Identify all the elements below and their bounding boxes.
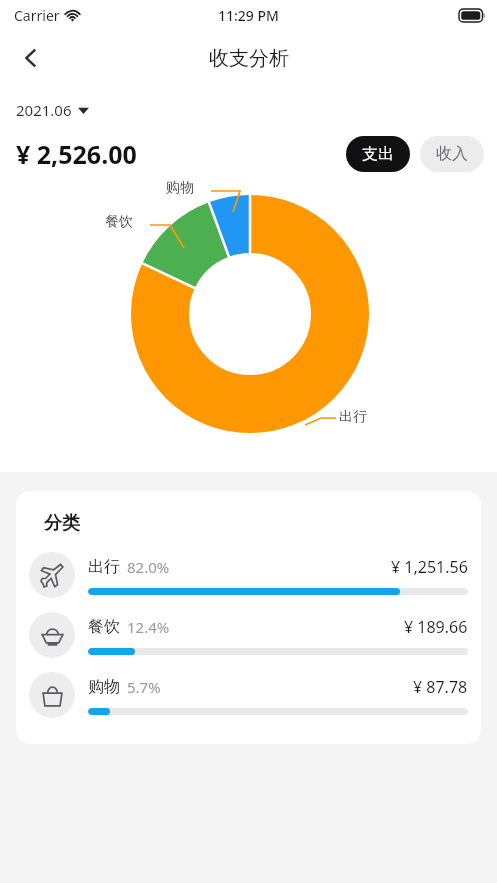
staticText: Carrier (14, 6, 60, 25)
staticText: ¥ 1,251.56 (391, 556, 468, 578)
staticText: ¥ 87.78 (413, 676, 468, 698)
button[interactable]: 2021.06 (16, 100, 89, 120)
staticText: 收入 (436, 144, 468, 164)
button[interactable]: 购物 (16, 672, 481, 718)
staticText: 购物 (166, 179, 194, 197)
staticText: 82.0% (127, 557, 170, 577)
staticText: 11:29 PM (218, 6, 279, 25)
staticText: 出行 (88, 557, 120, 577)
staticText: 2021.06 (16, 100, 72, 120)
staticText: 出行 (339, 408, 367, 426)
button[interactable]: Back (8, 34, 56, 82)
button[interactable]: 收入 (420, 136, 484, 172)
staticText: ¥ 2,526.00 (16, 137, 137, 171)
button[interactable]: 餐饮 (16, 612, 481, 658)
staticText: 餐饮 (88, 617, 120, 637)
staticText: 支出 (362, 144, 394, 164)
staticText: 餐饮 (105, 213, 133, 231)
staticText: 12.4% (127, 617, 170, 637)
button[interactable]: 出行 (16, 552, 481, 598)
staticText: 购物 (88, 677, 120, 697)
staticText: 分类 (44, 512, 80, 535)
staticText: 收支分析 (209, 46, 289, 71)
staticText: 5.7% (127, 677, 161, 697)
button[interactable]: 支出 (346, 136, 410, 172)
staticText: ¥ 189.66 (404, 616, 468, 638)
